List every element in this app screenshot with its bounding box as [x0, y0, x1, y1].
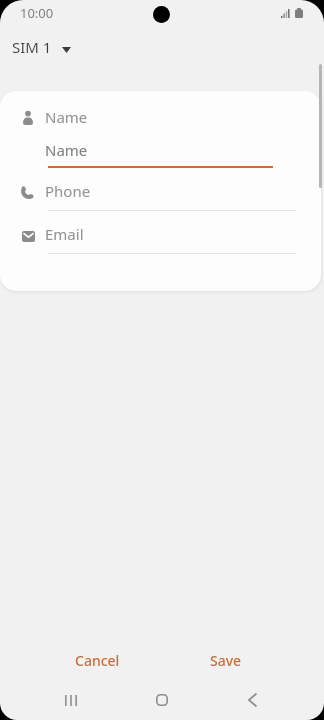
staticText: 10:00	[20, 4, 54, 22]
button[interactable]: Save	[198, 639, 254, 682]
staticText: Save	[210, 651, 242, 670]
button[interactable]: Home	[138, 682, 186, 718]
staticText: Email	[45, 224, 84, 244]
staticText: SIM 1	[12, 37, 52, 57]
staticText: Phone	[45, 181, 91, 201]
button[interactable]: Recent apps	[47, 682, 95, 718]
button[interactable]: Cancel	[63, 639, 132, 682]
staticText: Name	[45, 107, 88, 127]
staticText: Name	[45, 140, 88, 160]
staticText: Cancel	[75, 651, 120, 670]
button[interactable]: Back	[228, 682, 276, 718]
button[interactable]: SIM 1	[6, 34, 77, 60]
